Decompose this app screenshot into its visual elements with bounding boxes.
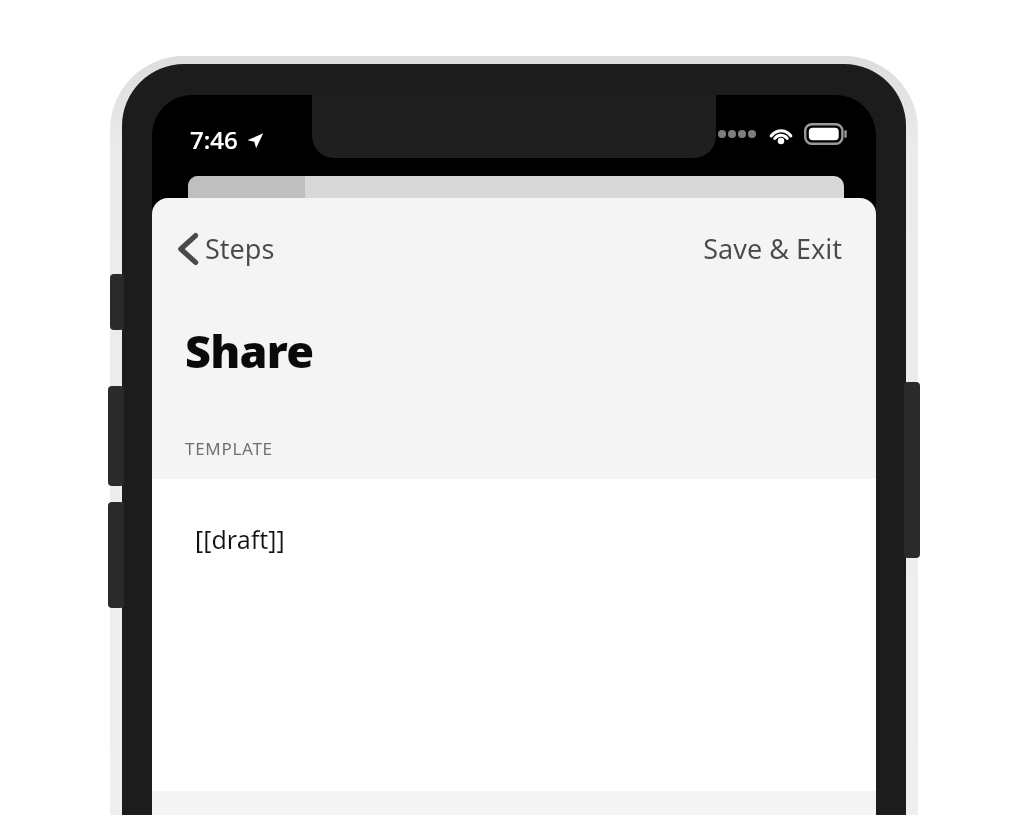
staticText: [[draft]] [195, 522, 285, 556]
staticText: Share [185, 320, 314, 381]
staticText: Save & Exit [703, 230, 842, 267]
button[interactable]: Save & Exit [695, 224, 850, 273]
staticText: TEMPLATE [185, 437, 273, 460]
button[interactable]: Steps [170, 224, 283, 273]
staticText: 7:46 [190, 123, 238, 156]
staticText: Steps [205, 230, 275, 267]
button[interactable]: [[draft]] [152, 479, 876, 791]
